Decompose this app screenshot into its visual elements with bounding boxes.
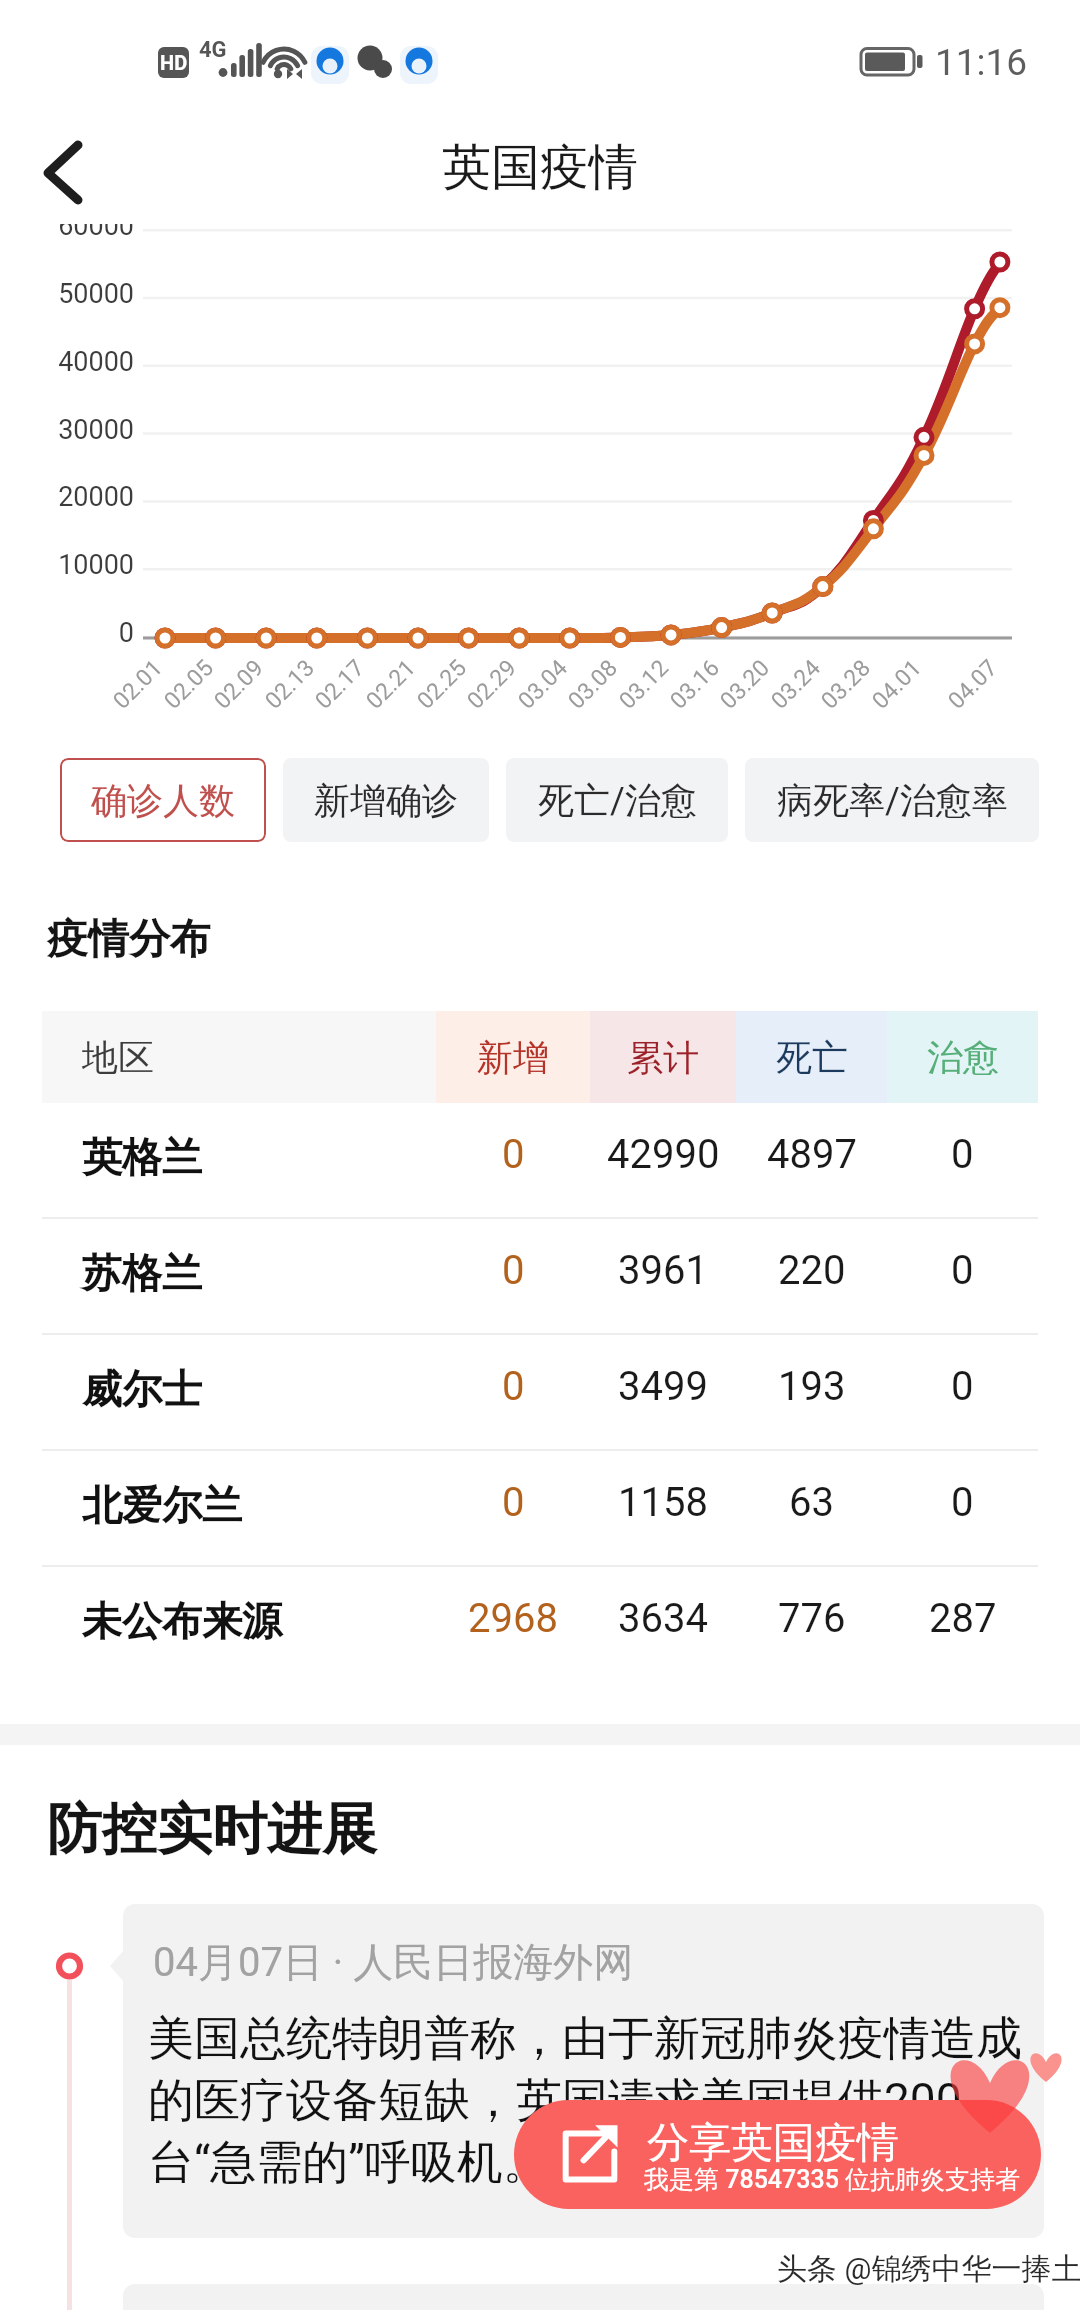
staticText: 分享英国疫情 <box>647 2117 899 2170</box>
staticText: 新增 <box>477 1035 549 1080</box>
staticText: 03.12 <box>614 654 674 714</box>
staticText: 北爱尔兰 <box>82 1480 242 1530</box>
staticText: 4G <box>199 37 227 63</box>
staticText: 0 <box>502 1247 525 1294</box>
staticText: 病死率/治愈率 <box>777 778 1008 823</box>
staticText: 1158 <box>618 1479 708 1526</box>
staticText: 04月07日 · 人民日报海外网 <box>153 1937 634 1987</box>
button[interactable]: 北爱尔兰 <box>42 1451 1038 1565</box>
staticText: 新增确诊 <box>314 778 458 823</box>
staticText: 威尔士 <box>82 1364 202 1414</box>
staticText: 3634 <box>618 1595 708 1642</box>
staticText: 50000 <box>0 278 134 310</box>
staticText: 63 <box>789 1479 834 1526</box>
button[interactable]: 苏格兰 <box>42 1219 1038 1333</box>
staticText: 死亡/治愈 <box>538 778 697 823</box>
staticText: 3961 <box>618 1247 708 1294</box>
staticText: 03.16 <box>665 654 725 714</box>
staticText: 0 <box>502 1479 525 1526</box>
staticText: 10000 <box>0 549 134 581</box>
staticText: 0 <box>951 1247 974 1294</box>
staticText: 02.17 <box>310 654 370 714</box>
staticText: 确诊人数 <box>91 778 235 823</box>
staticText: 疫情分布 <box>47 914 211 966</box>
staticText: 英国疫情 <box>442 137 638 199</box>
staticText: 苏格兰 <box>82 1248 202 1298</box>
staticText: 287 <box>929 1595 997 1642</box>
button[interactable]: 确诊人数 <box>60 758 266 842</box>
staticText: 0 <box>502 1131 525 1178</box>
staticText: 地区 <box>82 1035 154 1080</box>
staticText: 193 <box>778 1363 846 1410</box>
staticText: 累计 <box>627 1035 699 1080</box>
button[interactable]: 分享英国疫情 <box>514 2100 1041 2209</box>
staticText: 03.24 <box>766 654 826 714</box>
staticText: 02.13 <box>260 654 320 714</box>
button[interactable]: 新增确诊 <box>283 758 489 842</box>
staticText: 02.25 <box>412 654 472 714</box>
button[interactable]: Back <box>14 118 110 214</box>
staticText: HD <box>160 51 188 74</box>
staticText: 02.21 <box>361 654 421 714</box>
staticText: 42990 <box>607 1131 720 1178</box>
staticText: 03.04 <box>513 654 573 714</box>
button[interactable]: 威尔士 <box>42 1335 1038 1449</box>
staticText: 0 <box>951 1131 974 1178</box>
staticText: 03.20 <box>715 654 775 714</box>
button[interactable]: 04月07日 · 人民日报海外网 <box>123 1904 1044 2238</box>
staticText: 3499 <box>618 1363 708 1410</box>
staticText: 2968 <box>468 1595 558 1642</box>
staticText: 220 <box>778 1247 846 1294</box>
staticText: 11:16 <box>935 41 1028 84</box>
staticText: 0 <box>0 617 134 649</box>
staticText: 20000 <box>0 481 134 513</box>
staticText: 未公布来源 <box>82 1596 282 1646</box>
staticText: 美国总统特朗普称，由于新冠肺炎疫情造成的医疗设备短缺，英国请求美国提供200台“… <box>148 2010 1024 2191</box>
staticText: 头条 @锦绣中华一捧土 <box>777 2250 1080 2288</box>
staticText: 03.28 <box>816 654 876 714</box>
staticText: 30000 <box>0 414 134 446</box>
staticText: 英格兰 <box>82 1132 202 1182</box>
staticText: 03.08 <box>563 654 623 714</box>
staticText: 60000 <box>0 224 134 242</box>
button[interactable]: 死亡/治愈 <box>506 758 728 842</box>
staticText: 0 <box>502 1363 525 1410</box>
staticText: 776 <box>778 1595 846 1642</box>
staticText: 0 <box>951 1479 974 1526</box>
staticText: 治愈 <box>927 1035 999 1080</box>
button[interactable]: 病死率/治愈率 <box>745 758 1039 842</box>
staticText: 02.29 <box>462 654 522 714</box>
staticText: 40000 <box>0 346 134 378</box>
staticText: 04.07 <box>943 654 1003 714</box>
staticText: 4897 <box>767 1131 857 1178</box>
staticText: 0 <box>951 1363 974 1410</box>
staticText: 死亡 <box>776 1035 848 1080</box>
button[interactable]: 英格兰 <box>42 1103 1038 1217</box>
staticText: 04.01 <box>867 654 927 714</box>
staticText: 02.01 <box>108 654 168 714</box>
staticText: 防控实时进展 <box>47 1795 377 1864</box>
staticText: 02.05 <box>159 654 219 714</box>
staticText: 我是第 78547335 位抗肺炎支持者 <box>644 2164 1021 2195</box>
staticText: 02.09 <box>209 654 269 714</box>
button[interactable]: 未公布来源 <box>42 1567 1038 1681</box>
